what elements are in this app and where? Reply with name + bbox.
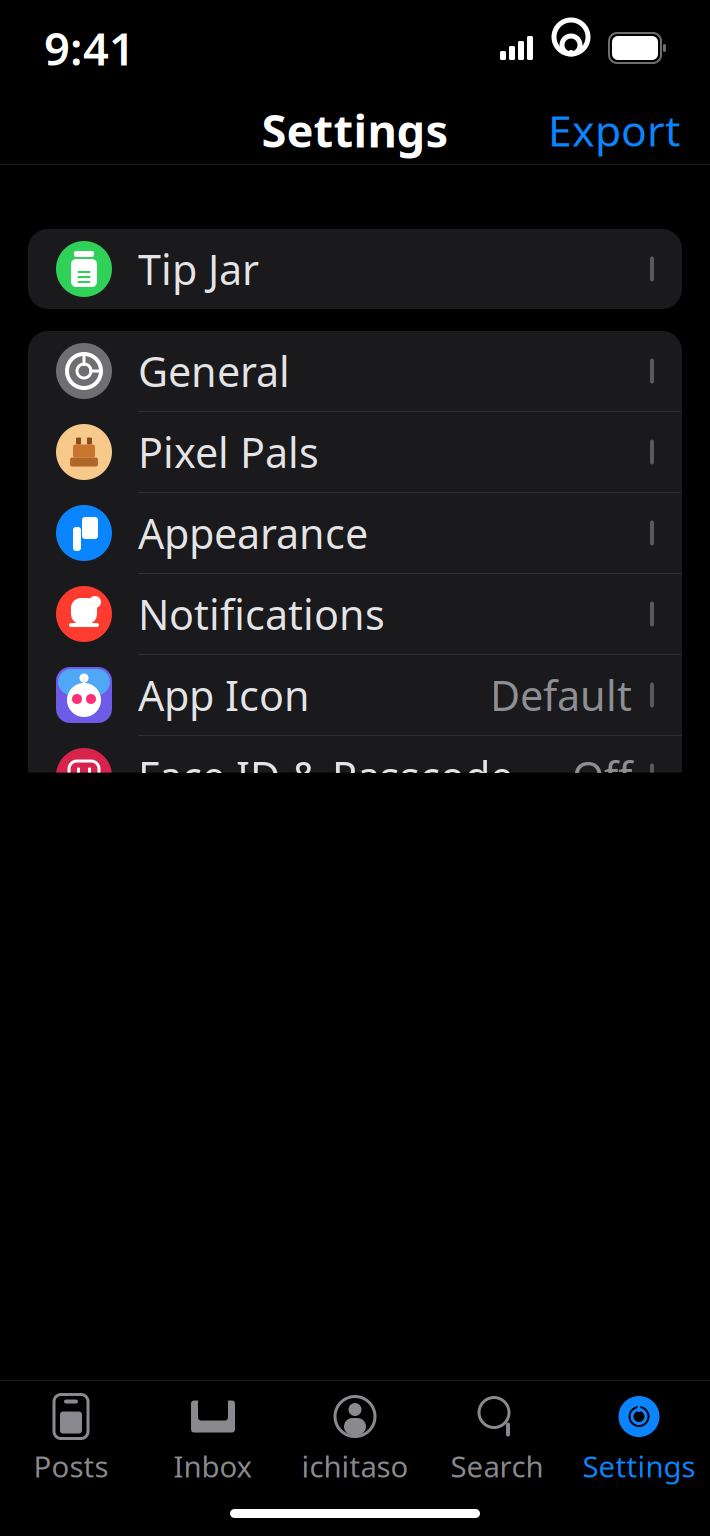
button[interactable]: ichitaso: [284, 1380, 426, 1493]
staticText: Tip Jar: [138, 242, 259, 296]
staticText: ichitaso: [301, 1446, 408, 1485]
staticText: App Icon: [138, 668, 310, 722]
staticText: Pixel Pals: [138, 425, 319, 479]
staticText: Posts: [33, 1446, 108, 1485]
button[interactable]: App Icon: [28, 655, 682, 736]
staticText: 9:41: [44, 18, 135, 78]
staticText: General: [138, 344, 290, 398]
button[interactable]: Inbox: [142, 1380, 284, 1493]
staticText: Off: [572, 749, 632, 803]
staticText: Default: [490, 668, 632, 722]
button[interactable]: Pixel Pals: [28, 412, 682, 493]
button[interactable]: Notifications: [28, 574, 682, 655]
staticText: Settings: [261, 100, 448, 160]
button[interactable]: Tip Jar: [28, 229, 682, 309]
button[interactable]: Settings: [568, 1380, 710, 1493]
button[interactable]: Face ID & Passcode: [28, 736, 682, 817]
staticText: Face ID & Passcode: [138, 749, 513, 803]
button[interactable]: General: [28, 331, 682, 412]
staticText: Export: [548, 102, 680, 158]
button[interactable]: Export: [530, 92, 698, 168]
staticText: Search: [450, 1446, 543, 1485]
staticText: Appearance: [138, 506, 368, 560]
staticText: Notifications: [138, 587, 385, 641]
staticText: Inbox: [173, 1446, 252, 1485]
button[interactable]: Search: [426, 1380, 568, 1493]
button[interactable]: Appearance: [28, 493, 682, 574]
staticText: Settings: [582, 1446, 695, 1485]
button[interactable]: Posts: [0, 1380, 142, 1493]
